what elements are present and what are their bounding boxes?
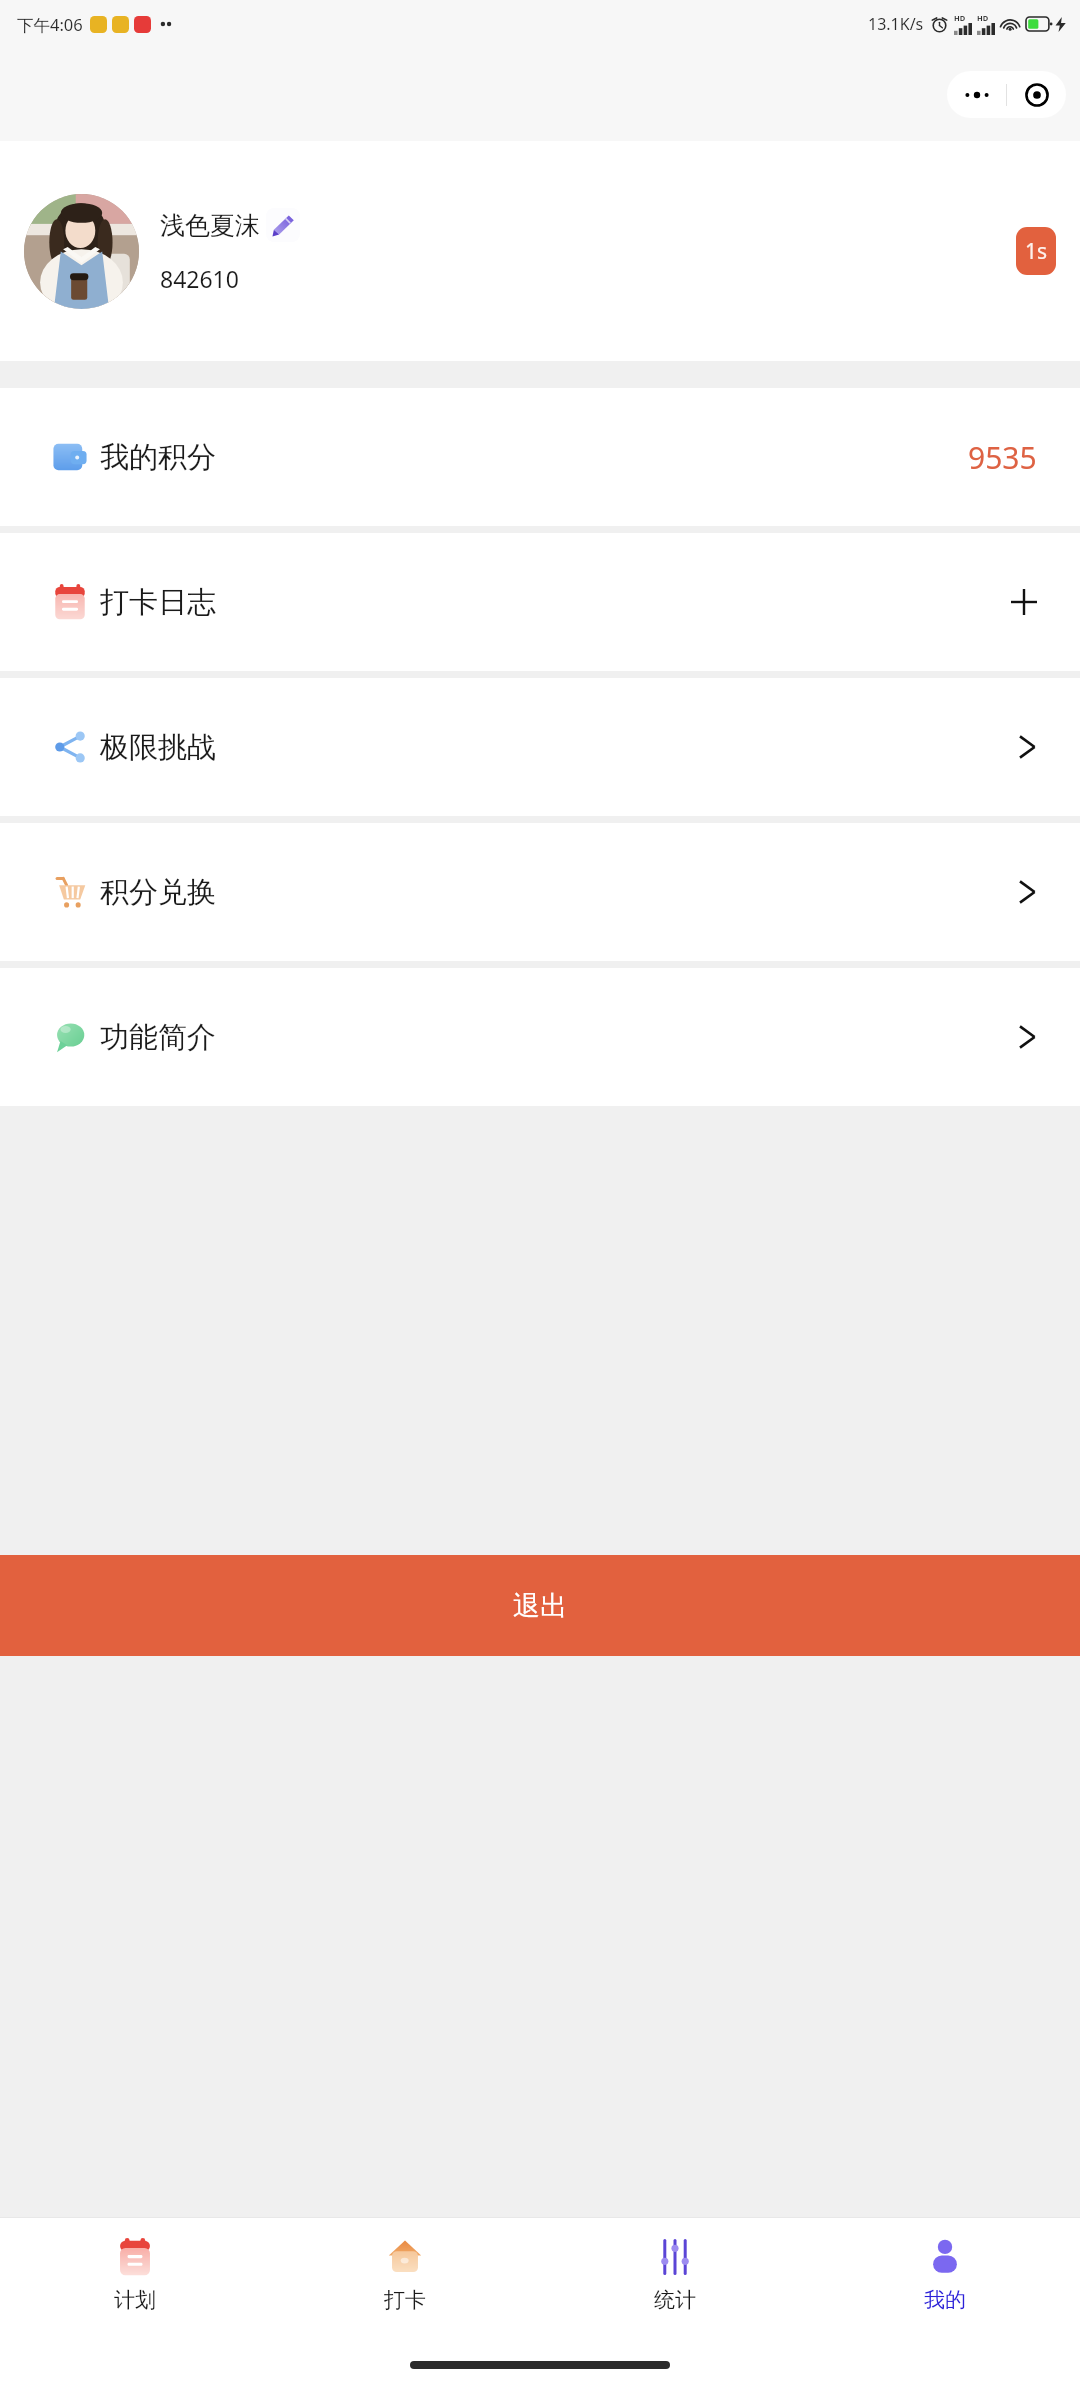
staticText: 打卡日志 [100,584,216,621]
button[interactable]: 积分兑换 [0,823,1080,961]
staticText: 退出 [513,1589,567,1623]
button[interactable]: 极限挑战 [0,678,1080,816]
button[interactable]: 1s [1016,227,1056,275]
staticText: 我的 [924,2287,966,2313]
staticText: 功能简介 [100,1019,216,1056]
button[interactable]: Mini program menu [947,71,1066,118]
staticText: HD [977,13,989,23]
button[interactable]: 退出 [0,1555,1080,1656]
staticText: 极限挑战 [100,729,216,766]
staticText: 打卡 [384,2287,426,2313]
staticText: 统计 [654,2287,696,2313]
button[interactable]: 计划 [0,2217,270,2330]
staticText: 842610 [160,263,239,294]
button[interactable]: Edit name [266,208,300,242]
staticText: HD [954,13,966,23]
staticText: 积分兑换 [100,874,216,911]
button[interactable]: 统计 [540,2217,810,2330]
staticText: 下午4:06 [17,13,83,36]
button[interactable]: 浅色夏沫 [0,141,1080,361]
button[interactable]: 功能简介 [0,968,1080,1106]
staticText: 浅色夏沫 [160,210,260,241]
staticText: 13.1K/s [868,13,924,35]
button[interactable]: 打卡 [270,2217,540,2330]
button[interactable]: 打卡日志 [0,533,1080,671]
staticText: 计划 [114,2287,156,2313]
button[interactable]: 我的 [810,2217,1080,2330]
staticText: 9535 [968,437,1037,478]
staticText: 1s [1025,237,1048,266]
staticText: 我的积分 [100,439,216,476]
button[interactable]: 我的积分 [0,388,1080,526]
